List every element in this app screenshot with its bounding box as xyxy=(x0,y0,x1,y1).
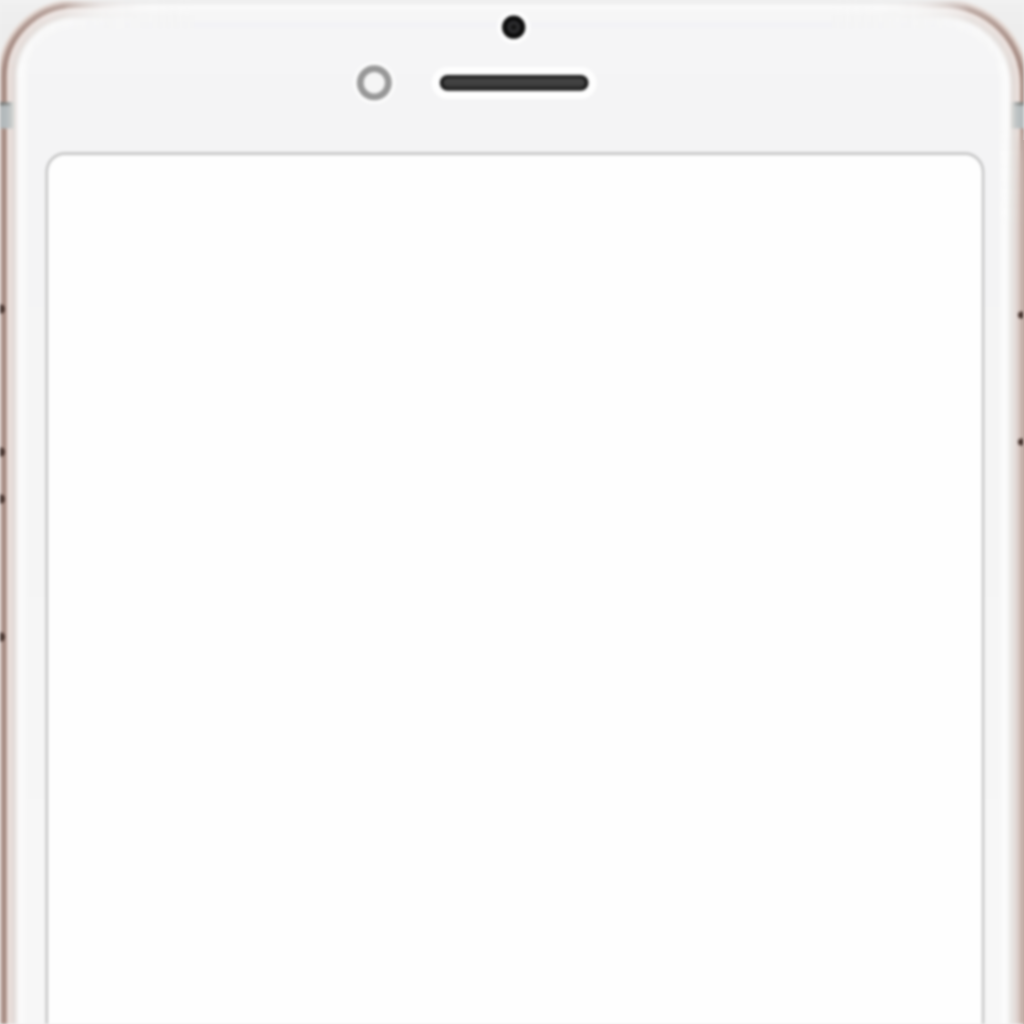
button[interactable]: Earpiece, sensor and front camera xyxy=(340,0,600,110)
